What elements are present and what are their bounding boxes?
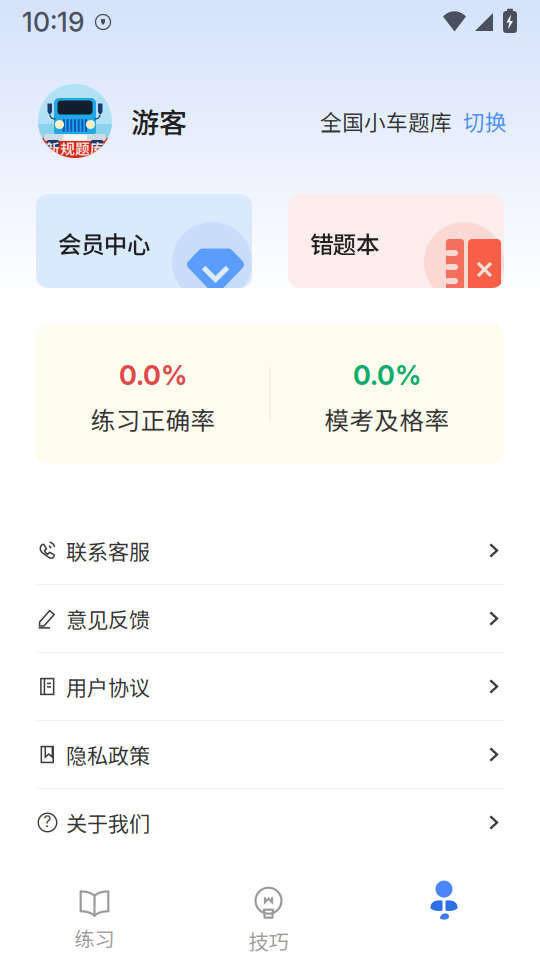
staticText: 隐私政策 — [66, 739, 150, 770]
staticText: 模考及格率 — [324, 401, 449, 437]
button[interactable]: 错题本 — [288, 194, 504, 288]
staticText: 游客 — [131, 101, 187, 141]
staticText: 新规题库 — [45, 137, 105, 159]
button[interactable]: 会员中心 — [36, 194, 252, 288]
button[interactable]: ? — [0, 789, 540, 857]
button[interactable]: 意见反馈 — [0, 585, 540, 653]
staticText: 全国小车题库 — [320, 105, 452, 137]
staticText: 技巧 — [248, 926, 288, 955]
staticText: 0.0% — [353, 359, 421, 391]
staticText: 意见反馈 — [66, 603, 150, 634]
staticText: 关于我们 — [66, 807, 150, 838]
button[interactable]: 练习 — [34, 879, 154, 960]
button[interactable]: Profile — [384, 878, 504, 960]
staticText: 练习正确率 — [90, 401, 215, 437]
staticText: 10:19 — [22, 6, 84, 38]
staticText: 用户协议 — [66, 671, 150, 702]
staticText: ? — [43, 811, 52, 832]
button[interactable]: 切换 — [452, 105, 507, 137]
staticText: 错题本 — [310, 226, 379, 260]
staticText: 0.0% — [119, 359, 187, 391]
staticText: 练习 — [74, 923, 114, 953]
button[interactable]: 技巧 — [208, 879, 328, 960]
button[interactable]: 用户协议 — [0, 653, 540, 721]
staticText: 会员中心 — [58, 226, 150, 260]
button[interactable]: 隐私政策 — [0, 721, 540, 789]
staticText: 切换 — [463, 105, 507, 137]
staticText: 联系客服 — [66, 535, 150, 566]
button[interactable]: 联系客服 — [0, 517, 540, 585]
